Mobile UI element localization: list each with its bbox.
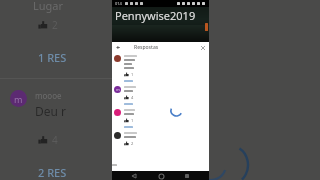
button[interactable]: 1 RES (38, 50, 67, 65)
staticText: 2 (52, 18, 58, 32)
button[interactable] (124, 80, 133, 82)
staticText: 2 RES (38, 165, 67, 180)
button[interactable]: 1 (112, 107, 209, 130)
staticText: 1 (131, 118, 134, 123)
staticText: 1 (131, 72, 134, 77)
button[interactable]: Back (114, 43, 123, 52)
staticText: m (116, 87, 120, 92)
staticText: Lugar (33, 0, 64, 13)
staticText: Deu r (35, 103, 67, 119)
button[interactable]: 2 (112, 130, 209, 146)
button[interactable]: Home (157, 172, 165, 180)
staticText: moooe (35, 90, 62, 101)
staticText: 014 (115, 1, 122, 6)
staticText: 4 (52, 133, 58, 147)
staticText: Respostas (134, 44, 159, 51)
staticText: 4 (131, 95, 134, 100)
staticText: Pennywise2019 (115, 8, 196, 23)
button[interactable]: Recents (183, 172, 191, 180)
button[interactable]: 2 RES (38, 165, 67, 180)
button[interactable]: 1 (112, 53, 209, 84)
button[interactable]: m (112, 84, 209, 107)
staticText: 1 RES (38, 50, 67, 65)
staticText: m (14, 93, 23, 105)
button[interactable]: Back (130, 172, 138, 180)
button[interactable]: Close (198, 43, 207, 52)
staticText: 2 (131, 141, 134, 146)
button[interactable] (124, 126, 133, 128)
button[interactable] (124, 103, 133, 105)
